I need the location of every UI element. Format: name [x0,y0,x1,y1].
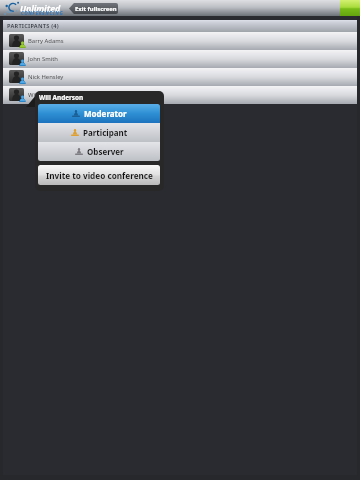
button[interactable]: John Smith [3,50,357,68]
staticText: PARTICIPANTS (4) [7,22,59,30]
staticText: Barry Adams [28,37,64,45]
staticText: Exit fullscreen [75,5,117,13]
button[interactable]: Participant [38,123,160,142]
button[interactable]: Nick Hensley [3,68,357,86]
staticText: Will Anderson [28,91,67,99]
staticText: Nick Hensley [28,73,64,81]
button[interactable]: Exit fullscreen [69,3,118,14]
button[interactable]: Start [340,0,360,16]
staticText: Observer [87,146,124,157]
button[interactable]: Moderator [38,104,160,123]
staticText: Invite to video conference [46,170,153,181]
staticText: Unlimited [20,3,61,15]
staticText: John Smith [28,55,59,63]
staticText: Moderator [84,108,127,119]
staticText: Will Anderson [39,93,84,102]
button[interactable]: Observer [38,142,160,161]
staticText: CONFERENCING [21,10,64,16]
button[interactable]: Invite to video conference [38,165,160,185]
button[interactable]: Will Anderson [3,86,357,104]
other: Unlimited Conferencing logo [2,0,22,16]
button[interactable]: Barry Adams [3,32,357,50]
staticText: Participant [83,127,128,138]
